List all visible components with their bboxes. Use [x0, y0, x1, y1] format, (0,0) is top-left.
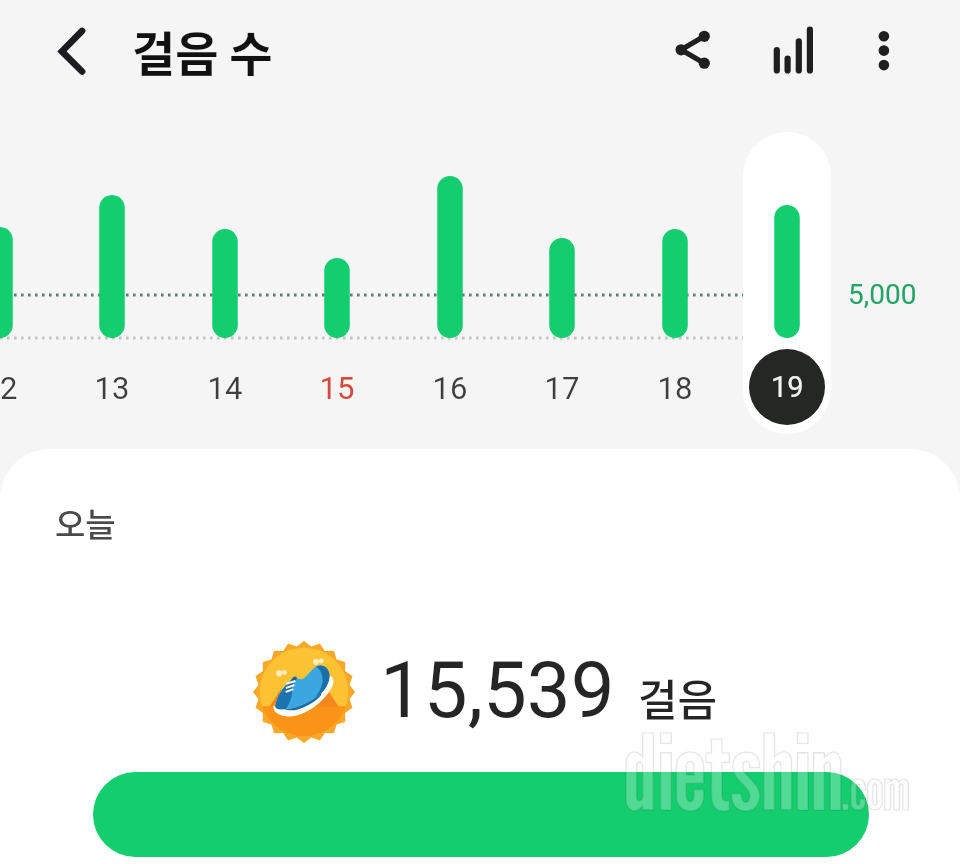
- staticText: 걸음 수: [132, 16, 273, 84]
- button[interactable]: Statistics: [755, 14, 827, 86]
- staticText: dietshin: [624, 708, 844, 834]
- button[interactable]: More options: [848, 14, 920, 86]
- button[interactable]: [93, 772, 869, 857]
- button[interactable]: 19: [749, 349, 825, 425]
- staticText: 오늘: [55, 499, 116, 547]
- staticText: 16: [410, 370, 490, 406]
- staticText: dietshin: [624, 708, 844, 834]
- staticText: 17: [522, 370, 602, 406]
- staticText: 15,539: [380, 645, 615, 736]
- staticText: 18: [635, 370, 715, 406]
- staticText: 19: [771, 370, 804, 404]
- staticText: .com: [841, 756, 910, 823]
- staticText: 14: [185, 370, 265, 406]
- staticText: .com: [841, 756, 910, 823]
- staticText: 15: [297, 370, 377, 406]
- button[interactable]: Back: [36, 15, 108, 87]
- staticText: 13: [72, 370, 152, 406]
- staticText: 걸음: [638, 666, 718, 728]
- staticText: 12: [0, 370, 40, 406]
- button[interactable]: Share: [657, 14, 729, 86]
- staticText: 5,000: [848, 278, 917, 311]
